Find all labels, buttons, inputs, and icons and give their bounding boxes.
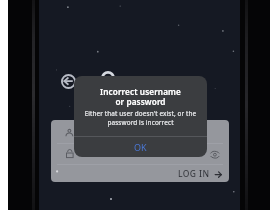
staticText: Either that user doesn't exist, or the p…	[74, 109, 207, 127]
button[interactable]: Back	[61, 74, 76, 89]
staticText: OK	[134, 141, 147, 153]
staticText: LOG IN	[178, 168, 210, 180]
button[interactable]: Show password	[209, 149, 221, 161]
button[interactable]: OK	[74, 137, 207, 157]
staticText: Incorrect username or password	[74, 86, 207, 108]
button[interactable]: LOG IN	[178, 168, 222, 180]
